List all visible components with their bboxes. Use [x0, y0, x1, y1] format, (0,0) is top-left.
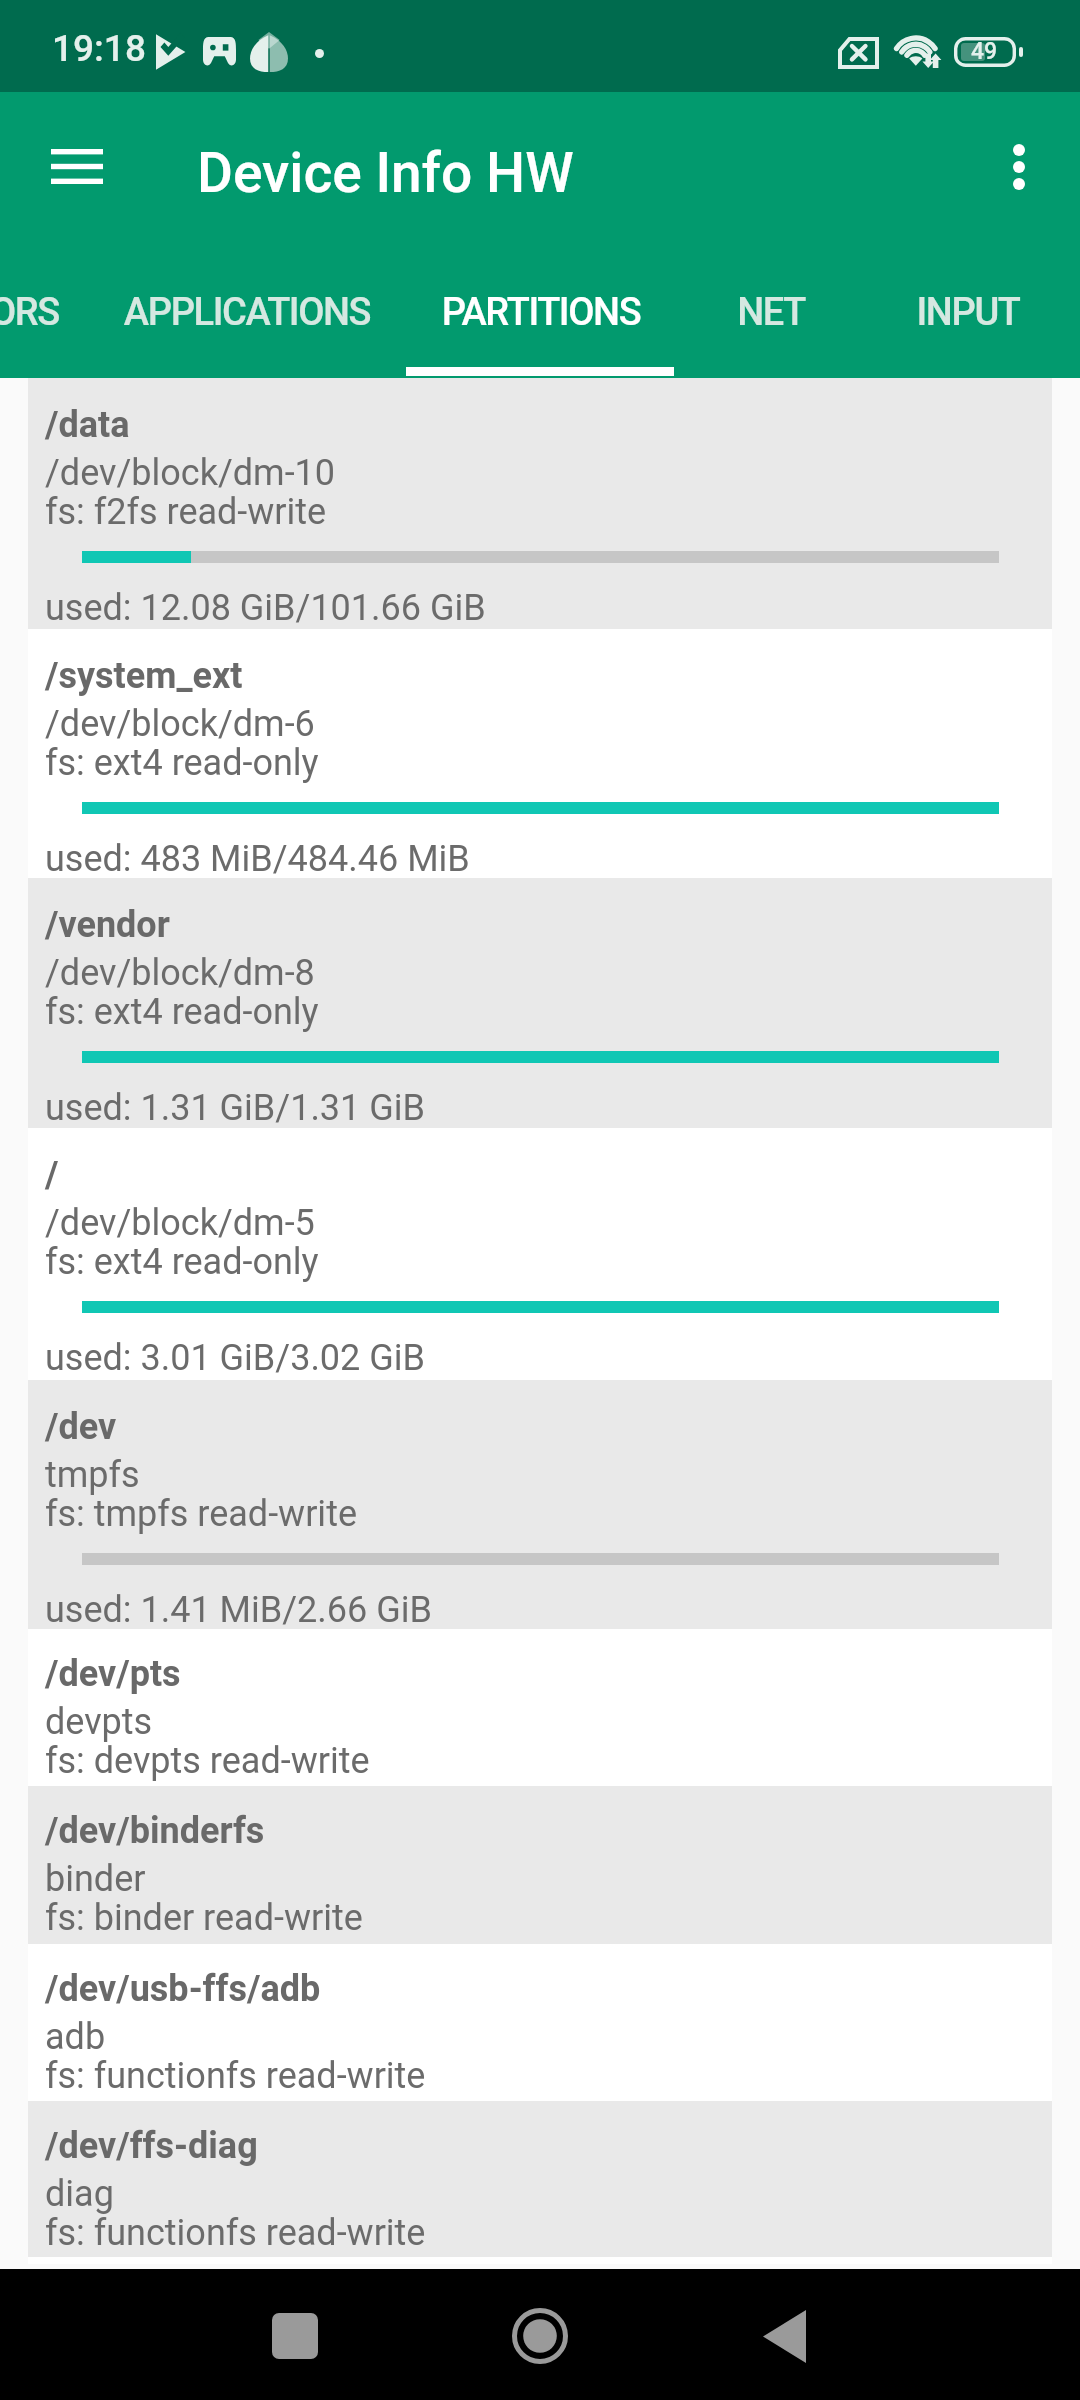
button[interactable]: /dev/ffs-diag [28, 2101, 1052, 2257]
staticText: / [45, 1154, 59, 1196]
button[interactable]: /system_ext [28, 629, 1052, 878]
staticText: fs: tmpfs read-write [45, 1493, 357, 1535]
staticText: fs: devpts read-write [45, 1740, 370, 1782]
staticText: diag [45, 2173, 114, 2215]
button[interactable]: APPLICATIONS [117, 278, 377, 378]
staticText: devpts [45, 1701, 153, 1743]
staticText: SENSORS [0, 290, 110, 335]
button[interactable]: Back [739, 2291, 829, 2381]
staticText: /dev/block/dm-8 [45, 952, 315, 994]
staticText: /dev/block/dm-6 [45, 703, 315, 745]
staticText: adb [45, 2016, 106, 2058]
staticText: /data [45, 404, 130, 446]
staticText: fs: ext4 read-only [45, 742, 319, 784]
staticText: /dev [45, 1406, 117, 1448]
button[interactable]: SENSORS [0, 278, 110, 378]
staticText: binder [45, 1858, 146, 1900]
button[interactable]: PARTITIONS [411, 278, 671, 378]
staticText: /dev/usb-ffs/adb [45, 1968, 321, 2010]
staticText: /dev/block/dm-10 [45, 452, 336, 494]
button[interactable]: /data [28, 378, 1052, 629]
staticText: /vendor [45, 904, 170, 946]
button[interactable]: /dev/pts [28, 1629, 1052, 1786]
button[interactable]: /dev/usb-ffs/adb [28, 1944, 1052, 2101]
button[interactable]: INPUT [838, 278, 1080, 378]
staticText: /dev/binderfs [45, 1810, 265, 1852]
staticText: /dev/pts [45, 1653, 181, 1695]
staticText: fs: f2fs read-write [45, 491, 327, 533]
staticText: used: 1.31 GiB/1.31 GiB [45, 1087, 425, 1129]
staticText: 49 [971, 38, 998, 65]
staticText: APPLICATIONS [117, 290, 377, 335]
button[interactable]: /dev/binderfs [28, 1786, 1052, 1944]
button[interactable]: / [28, 1128, 1052, 1380]
staticText: /dev/block/dm-5 [45, 1202, 315, 1244]
staticText: PARTITIONS [411, 290, 671, 335]
button[interactable]: Recent apps [250, 2291, 340, 2381]
staticText: tmpfs [45, 1454, 140, 1496]
staticText: /system_ext [45, 655, 243, 697]
staticText: INPUT [838, 290, 1080, 335]
button[interactable]: /vendor [28, 878, 1052, 1128]
button[interactable]: /dev [28, 1380, 1052, 1629]
staticText: Device Info HW [197, 141, 574, 205]
button[interactable]: NET [641, 278, 901, 378]
staticText: /dev/ffs-diag [45, 2125, 258, 2167]
staticText: fs: functionfs read-write [45, 2212, 426, 2254]
button[interactable]: More options [971, 119, 1067, 215]
staticText: used: 3.01 GiB/3.02 GiB [45, 1337, 425, 1379]
staticText: used: 1.41 MiB/2.66 GiB [45, 1589, 432, 1631]
staticText: 19:18 [52, 27, 146, 70]
staticText: fs: ext4 read-only [45, 991, 319, 1033]
staticText: NET [641, 290, 901, 335]
staticText: fs: functionfs read-write [45, 2055, 426, 2097]
button[interactable]: Open navigation drawer [29, 118, 125, 214]
staticText: used: 12.08 GiB/101.66 GiB [45, 587, 486, 629]
staticText: used: 483 MiB/484.46 MiB [45, 838, 470, 880]
button[interactable]: Home [495, 2291, 585, 2381]
staticText: fs: binder read-write [45, 1897, 363, 1939]
staticText: fs: ext4 read-only [45, 1241, 319, 1283]
